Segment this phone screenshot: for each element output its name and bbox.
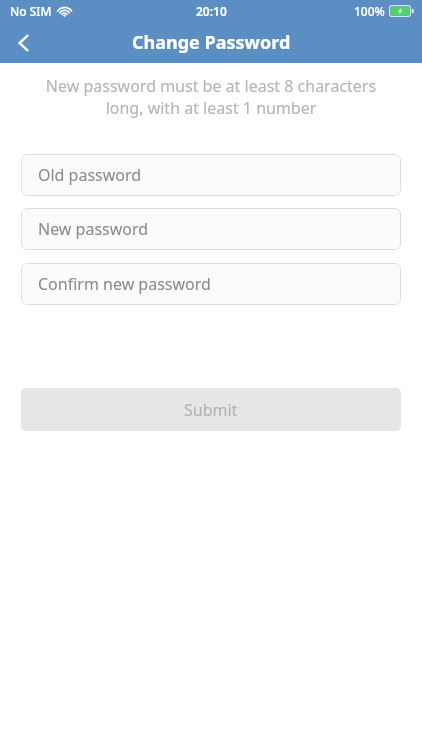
- staticText: New password must be at least 8 characte…: [20, 75, 402, 119]
- staticText: Old password: [38, 164, 142, 186]
- staticText: 100%: [354, 3, 385, 19]
- staticText: Confirm new password: [38, 273, 211, 295]
- button[interactable]: Back: [0, 22, 48, 63]
- staticText: 20:10: [196, 3, 227, 19]
- staticText: New password: [38, 218, 149, 240]
- staticText: No SIM: [10, 3, 52, 19]
- button[interactable]: Old password: [21, 154, 401, 196]
- button[interactable]: Submit: [21, 388, 401, 431]
- button[interactable]: New password: [21, 208, 401, 250]
- staticText: Submit: [184, 399, 238, 421]
- button[interactable]: Confirm new password: [21, 263, 401, 305]
- staticText: Change Password: [132, 30, 291, 55]
